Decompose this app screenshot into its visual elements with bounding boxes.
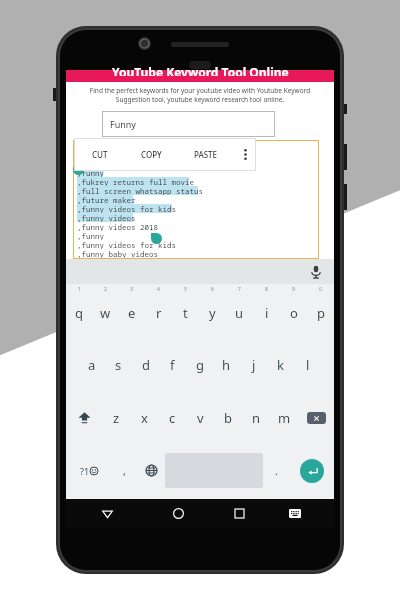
- staticText: p: [317, 304, 325, 322]
- staticText: ,fun bucket: [77, 150, 127, 159]
- button[interactable]: a: [78, 338, 105, 391]
- button[interactable]: ,: [111, 444, 138, 497]
- staticText: 1: [78, 286, 81, 293]
- staticText: COPY: [141, 149, 162, 160]
- staticText: i: [265, 304, 269, 322]
- staticText: ,funny: [77, 168, 104, 177]
- button[interactable]: 7: [226, 284, 253, 338]
- staticText: v: [197, 409, 204, 427]
- staticText: ,funny baby videos: [77, 249, 158, 258]
- staticText: h: [222, 356, 231, 374]
- button[interactable]: n: [242, 391, 270, 444]
- staticText: g: [196, 356, 204, 374]
- staticText: c: [169, 409, 176, 427]
- staticText: y: [209, 304, 216, 322]
- button[interactable]: ?1: [66, 444, 111, 497]
- staticText: 6: [211, 286, 214, 293]
- staticText: .: [275, 463, 278, 478]
- staticText: ?1: [80, 465, 90, 477]
- button[interactable]: Recent apps: [209, 499, 270, 527]
- button[interactable]: Voice input: [308, 264, 324, 280]
- button[interactable]: h: [213, 338, 240, 391]
- button[interactable]: g: [186, 338, 213, 391]
- staticText: t: [183, 304, 188, 322]
- staticText: 4: [157, 286, 160, 293]
- staticText: 7: [238, 286, 241, 293]
- staticText: ,full screen whatsapp status: [77, 186, 203, 195]
- staticText: 8: [265, 286, 268, 293]
- button[interactable]: 0: [307, 284, 334, 338]
- button[interactable]: Switch keyboard: [270, 499, 319, 527]
- staticText: s: [115, 356, 122, 374]
- button[interactable]: d: [132, 338, 159, 391]
- button[interactable]: j: [240, 338, 267, 391]
- staticText: ,funny videos for kids: [77, 204, 176, 213]
- staticText: ,funny: [77, 231, 104, 240]
- button[interactable]: Shift: [66, 391, 102, 444]
- staticText: 9: [292, 286, 295, 293]
- staticText: ,fukrey returns full movie: [77, 177, 194, 186]
- staticText: m: [278, 409, 291, 427]
- staticText: YouTube Keyword Tool Online: [112, 64, 289, 76]
- button[interactable]: CUT: [74, 138, 125, 171]
- button[interactable]: b: [214, 391, 242, 444]
- staticText: j: [252, 356, 256, 374]
- button[interactable]: Change language: [138, 444, 165, 497]
- staticText: b: [224, 409, 232, 427]
- staticText: x: [141, 409, 148, 427]
- button[interactable]: Backspace: [298, 391, 334, 444]
- staticText: z: [113, 409, 120, 427]
- button[interactable]: 8: [253, 284, 280, 338]
- staticText: ,funny videos 2018: [77, 222, 158, 231]
- button[interactable]: l: [294, 338, 321, 391]
- button[interactable]: 3: [118, 284, 145, 338]
- button[interactable]: 2: [92, 284, 118, 338]
- staticText: 5: [184, 286, 187, 293]
- button[interactable]: v: [186, 391, 214, 444]
- staticText: q: [75, 304, 83, 322]
- staticText: n: [252, 409, 261, 427]
- button[interactable]: COPY: [125, 138, 177, 171]
- button[interactable]: More options: [234, 138, 256, 171]
- button[interactable]: z: [102, 391, 130, 444]
- staticText: ,funny videos for kids: [77, 240, 176, 249]
- staticText: r: [156, 304, 162, 322]
- staticText: PASTE: [194, 149, 218, 160]
- button[interactable]: 5: [172, 284, 199, 338]
- staticText: l: [306, 356, 310, 374]
- staticText: 2: [104, 286, 107, 293]
- staticText: Funny: [110, 118, 136, 130]
- staticText: Find the perfect keywords for your youtu…: [72, 86, 328, 104]
- button[interactable]: s: [105, 338, 132, 391]
- button[interactable]: PASTE: [177, 138, 234, 171]
- staticText: ,future maker: [77, 195, 136, 204]
- button[interactable]: Funny: [102, 111, 275, 137]
- button[interactable]: c: [158, 391, 186, 444]
- button[interactable]: Home: [148, 499, 209, 527]
- button[interactable]: f: [159, 338, 186, 391]
- button[interactable]: .: [263, 444, 290, 497]
- button[interactable]: Back: [66, 499, 148, 527]
- button[interactable]: 9: [280, 284, 307, 338]
- button[interactable]: k: [267, 338, 294, 391]
- staticText: o: [290, 304, 298, 322]
- button[interactable]: m: [270, 391, 298, 444]
- staticText: k: [277, 356, 284, 374]
- staticText: e: [128, 304, 136, 322]
- staticText: ,: [123, 463, 126, 478]
- staticText: 3: [130, 286, 133, 293]
- staticText: ,funny videos: [77, 213, 136, 222]
- button[interactable]: x: [130, 391, 158, 444]
- button[interactable]: 4: [145, 284, 172, 338]
- staticText: CUT: [92, 149, 108, 160]
- staticText: u: [235, 304, 244, 322]
- button[interactable]: 6: [199, 284, 226, 338]
- button[interactable]: Enter: [290, 444, 334, 497]
- staticText: d: [142, 356, 150, 374]
- staticText: w: [100, 304, 111, 322]
- button[interactable]: 1: [66, 284, 92, 338]
- staticText: 0: [319, 286, 322, 293]
